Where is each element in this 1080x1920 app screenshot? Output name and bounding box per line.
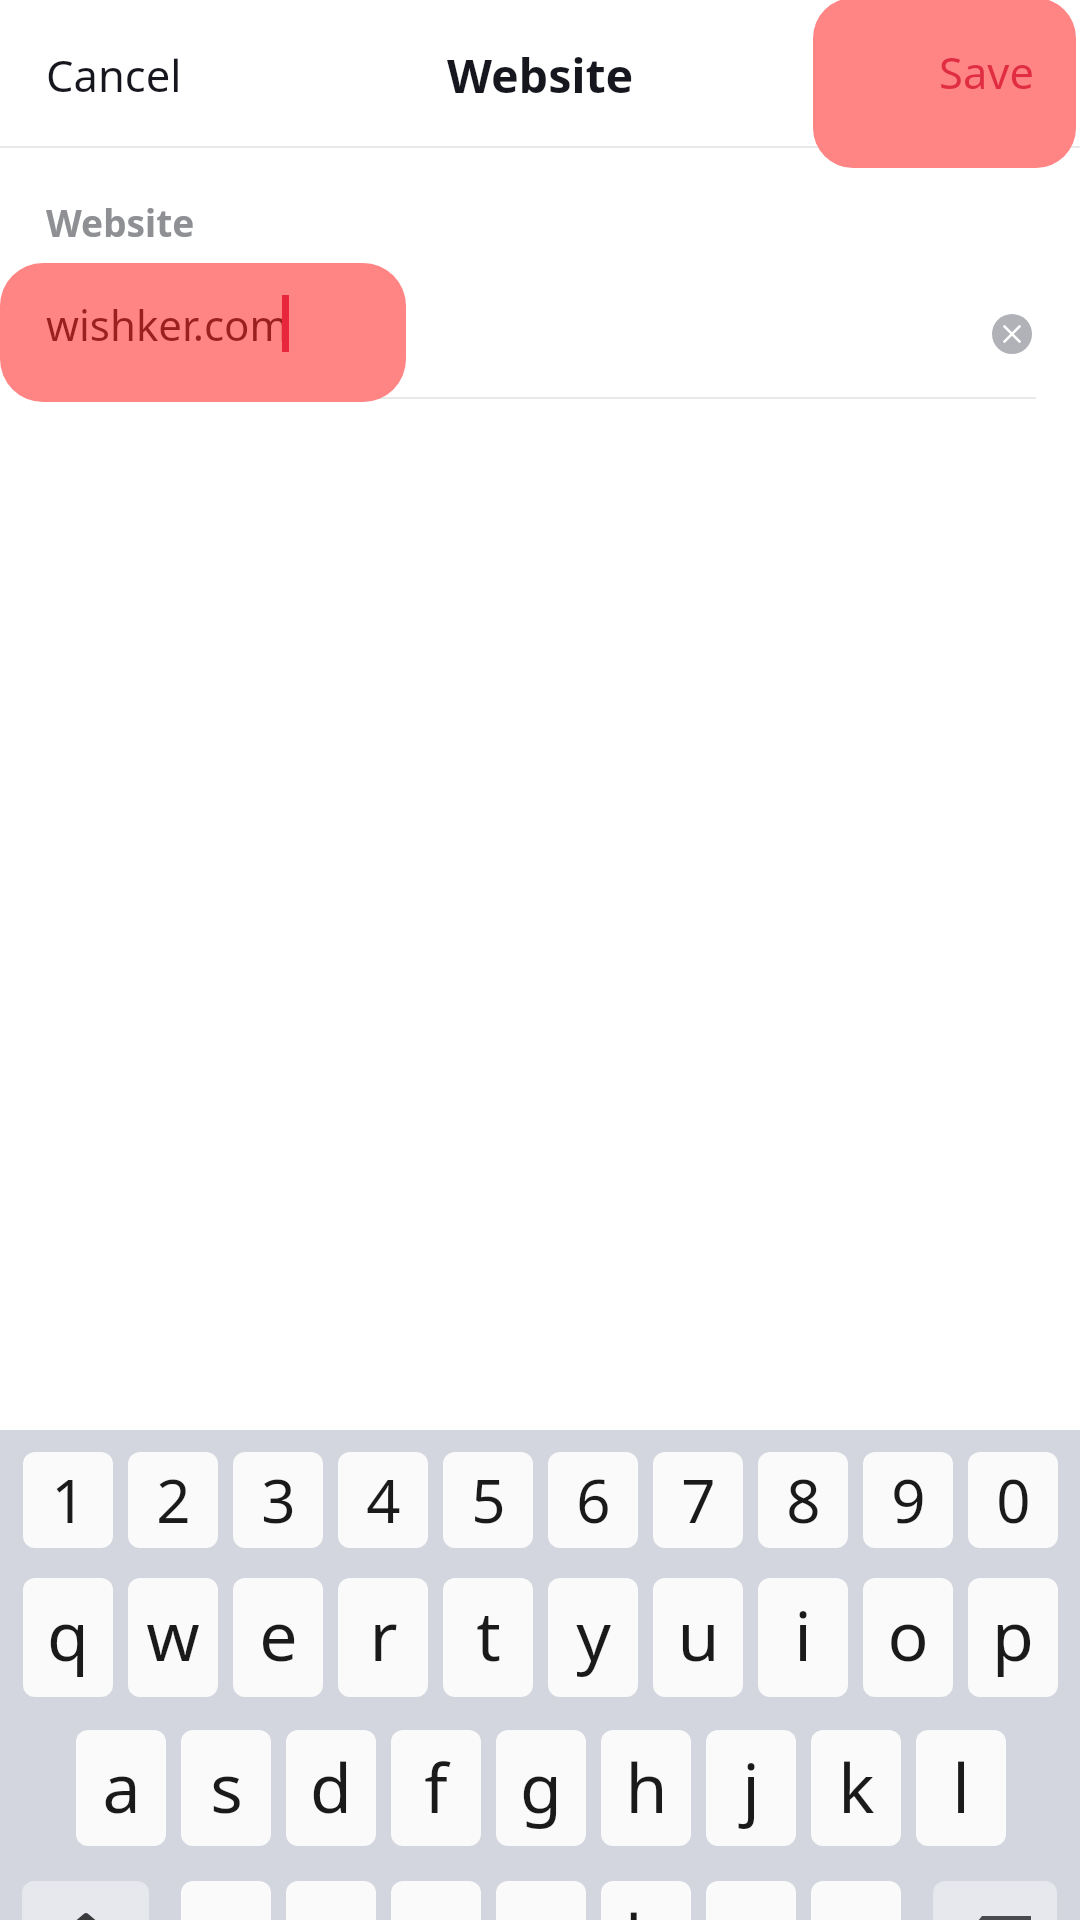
button[interactable]: n (706, 1881, 796, 1920)
staticText: l (952, 1740, 970, 1833)
button[interactable]: Backspace (933, 1881, 1057, 1920)
button[interactable]: r (338, 1578, 428, 1697)
button[interactable]: 0 (968, 1452, 1058, 1548)
button[interactable]: 7 (653, 1452, 743, 1548)
button[interactable]: Cancel (24, 24, 204, 124)
button[interactable]: Clear text (992, 314, 1032, 354)
button[interactable]: 9 (863, 1452, 953, 1548)
staticText: 7 (681, 1459, 716, 1541)
staticText: a (102, 1740, 141, 1833)
staticText: 5 (471, 1459, 506, 1541)
staticText: s (210, 1740, 243, 1833)
staticText: y (576, 1588, 611, 1681)
button[interactable]: Save (813, 0, 1076, 168)
staticText: 6 (576, 1459, 611, 1541)
staticText: h (625, 1740, 668, 1833)
staticText: 3 (261, 1459, 296, 1541)
staticText: e (259, 1588, 298, 1681)
button[interactable]: 4 (338, 1452, 428, 1548)
button[interactable]: d (286, 1730, 376, 1846)
staticText: 9 (891, 1459, 926, 1541)
staticText: r (369, 1588, 398, 1681)
button[interactable]: i (758, 1578, 848, 1697)
staticText: 8 (786, 1459, 821, 1541)
button[interactable]: g (496, 1730, 586, 1846)
staticText: wishker.com (46, 296, 289, 353)
button[interactable]: 3 (233, 1452, 323, 1548)
staticText: q (47, 1588, 89, 1681)
button[interactable]: c (391, 1881, 481, 1920)
button[interactable]: v (496, 1881, 586, 1920)
staticText: 2 (156, 1459, 191, 1541)
button[interactable]: x (286, 1881, 376, 1920)
staticText: k (838, 1740, 875, 1833)
staticText: t (476, 1588, 501, 1681)
button[interactable]: 8 (758, 1452, 848, 1548)
button[interactable]: e (233, 1578, 323, 1697)
button[interactable]: Shift (22, 1881, 149, 1920)
button[interactable]: t (443, 1578, 533, 1697)
staticText: 4 (366, 1459, 401, 1541)
staticText: g (520, 1740, 562, 1833)
staticText: 1 (51, 1459, 86, 1541)
staticText: p (992, 1588, 1034, 1681)
button[interactable]: h (601, 1730, 691, 1846)
staticText: f (424, 1740, 448, 1833)
button[interactable]: p (968, 1578, 1058, 1697)
button[interactable]: f (391, 1730, 481, 1846)
button[interactable]: u (653, 1578, 743, 1697)
button[interactable]: Website text field (44, 258, 1036, 398)
button[interactable]: 1 (23, 1452, 113, 1548)
button[interactable]: 2 (128, 1452, 218, 1548)
button[interactable]: q (23, 1578, 113, 1697)
staticText: Cancel (46, 45, 182, 104)
staticText: 0 (996, 1459, 1031, 1541)
button[interactable]: l (916, 1730, 1006, 1846)
staticText: j (742, 1740, 760, 1833)
button[interactable]: o (863, 1578, 953, 1697)
staticText: Website (46, 197, 195, 247)
button[interactable]: a (76, 1730, 166, 1846)
staticText: Save (939, 42, 1034, 101)
staticText: u (677, 1588, 720, 1681)
staticText: d (310, 1740, 352, 1833)
button[interactable]: k (811, 1730, 901, 1846)
staticText: w (146, 1588, 200, 1681)
button[interactable]: s (181, 1730, 271, 1846)
button[interactable]: z (181, 1881, 271, 1920)
button[interactable]: w (128, 1578, 218, 1697)
staticText: b (625, 1891, 667, 1920)
button[interactable]: m (811, 1881, 901, 1920)
button[interactable]: j (706, 1730, 796, 1846)
button[interactable]: 6 (548, 1452, 638, 1548)
button[interactable]: b (601, 1881, 691, 1920)
staticText: Website (447, 43, 634, 106)
button[interactable]: 5 (443, 1452, 533, 1548)
staticText: i (794, 1588, 812, 1681)
button[interactable]: y (548, 1578, 638, 1697)
staticText: o (887, 1588, 929, 1681)
